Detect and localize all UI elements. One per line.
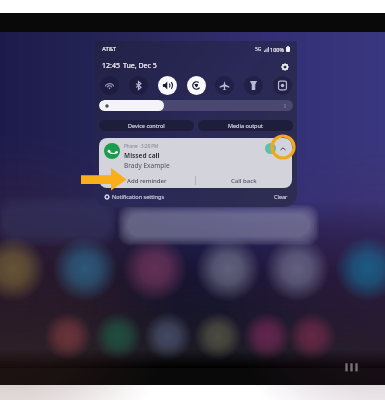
button[interactable]: Brightness: [99, 100, 293, 111]
staticText: Notification settings: [112, 193, 165, 200]
button[interactable]: Screen record: [273, 76, 292, 95]
staticText: Media output: [228, 122, 263, 129]
button[interactable]: Call back: [196, 173, 292, 188]
staticText: Clear: [274, 193, 288, 200]
button[interactable]: Add reminder: [99, 173, 195, 188]
button[interactable]: Auto rotate: [187, 76, 206, 95]
staticText: Brady Example: [124, 161, 170, 170]
button[interactable]: Settings: [279, 61, 290, 72]
button[interactable]: App icon: [265, 143, 276, 154]
button[interactable]: Media output: [198, 120, 293, 131]
staticText: 5G: [255, 46, 262, 53]
staticText: 100%: [270, 46, 285, 53]
staticText: Missed call: [124, 151, 160, 160]
button[interactable]: Sound: [158, 76, 177, 95]
staticText: 12:45: [102, 61, 120, 71]
staticText: Phone · 3:28 PM: [124, 143, 158, 149]
button[interactable]: Notification settings: [104, 193, 165, 200]
button[interactable]: Device control: [99, 120, 194, 131]
staticText: Add reminder: [127, 177, 167, 185]
button[interactable]: Wi-Fi: [100, 76, 119, 95]
staticText: Call back: [231, 177, 257, 185]
button[interactable]: Airplane mode: [215, 76, 234, 95]
button[interactable]: Bluetooth: [129, 76, 148, 95]
staticText: AT&T: [102, 45, 116, 53]
staticText: Tue, Dec 5: [123, 61, 157, 71]
button[interactable]: Flashlight: [244, 76, 263, 95]
staticText: Device control: [128, 122, 165, 129]
button[interactable]: Clear: [274, 193, 288, 200]
button[interactable]: Collapse: [277, 143, 289, 155]
